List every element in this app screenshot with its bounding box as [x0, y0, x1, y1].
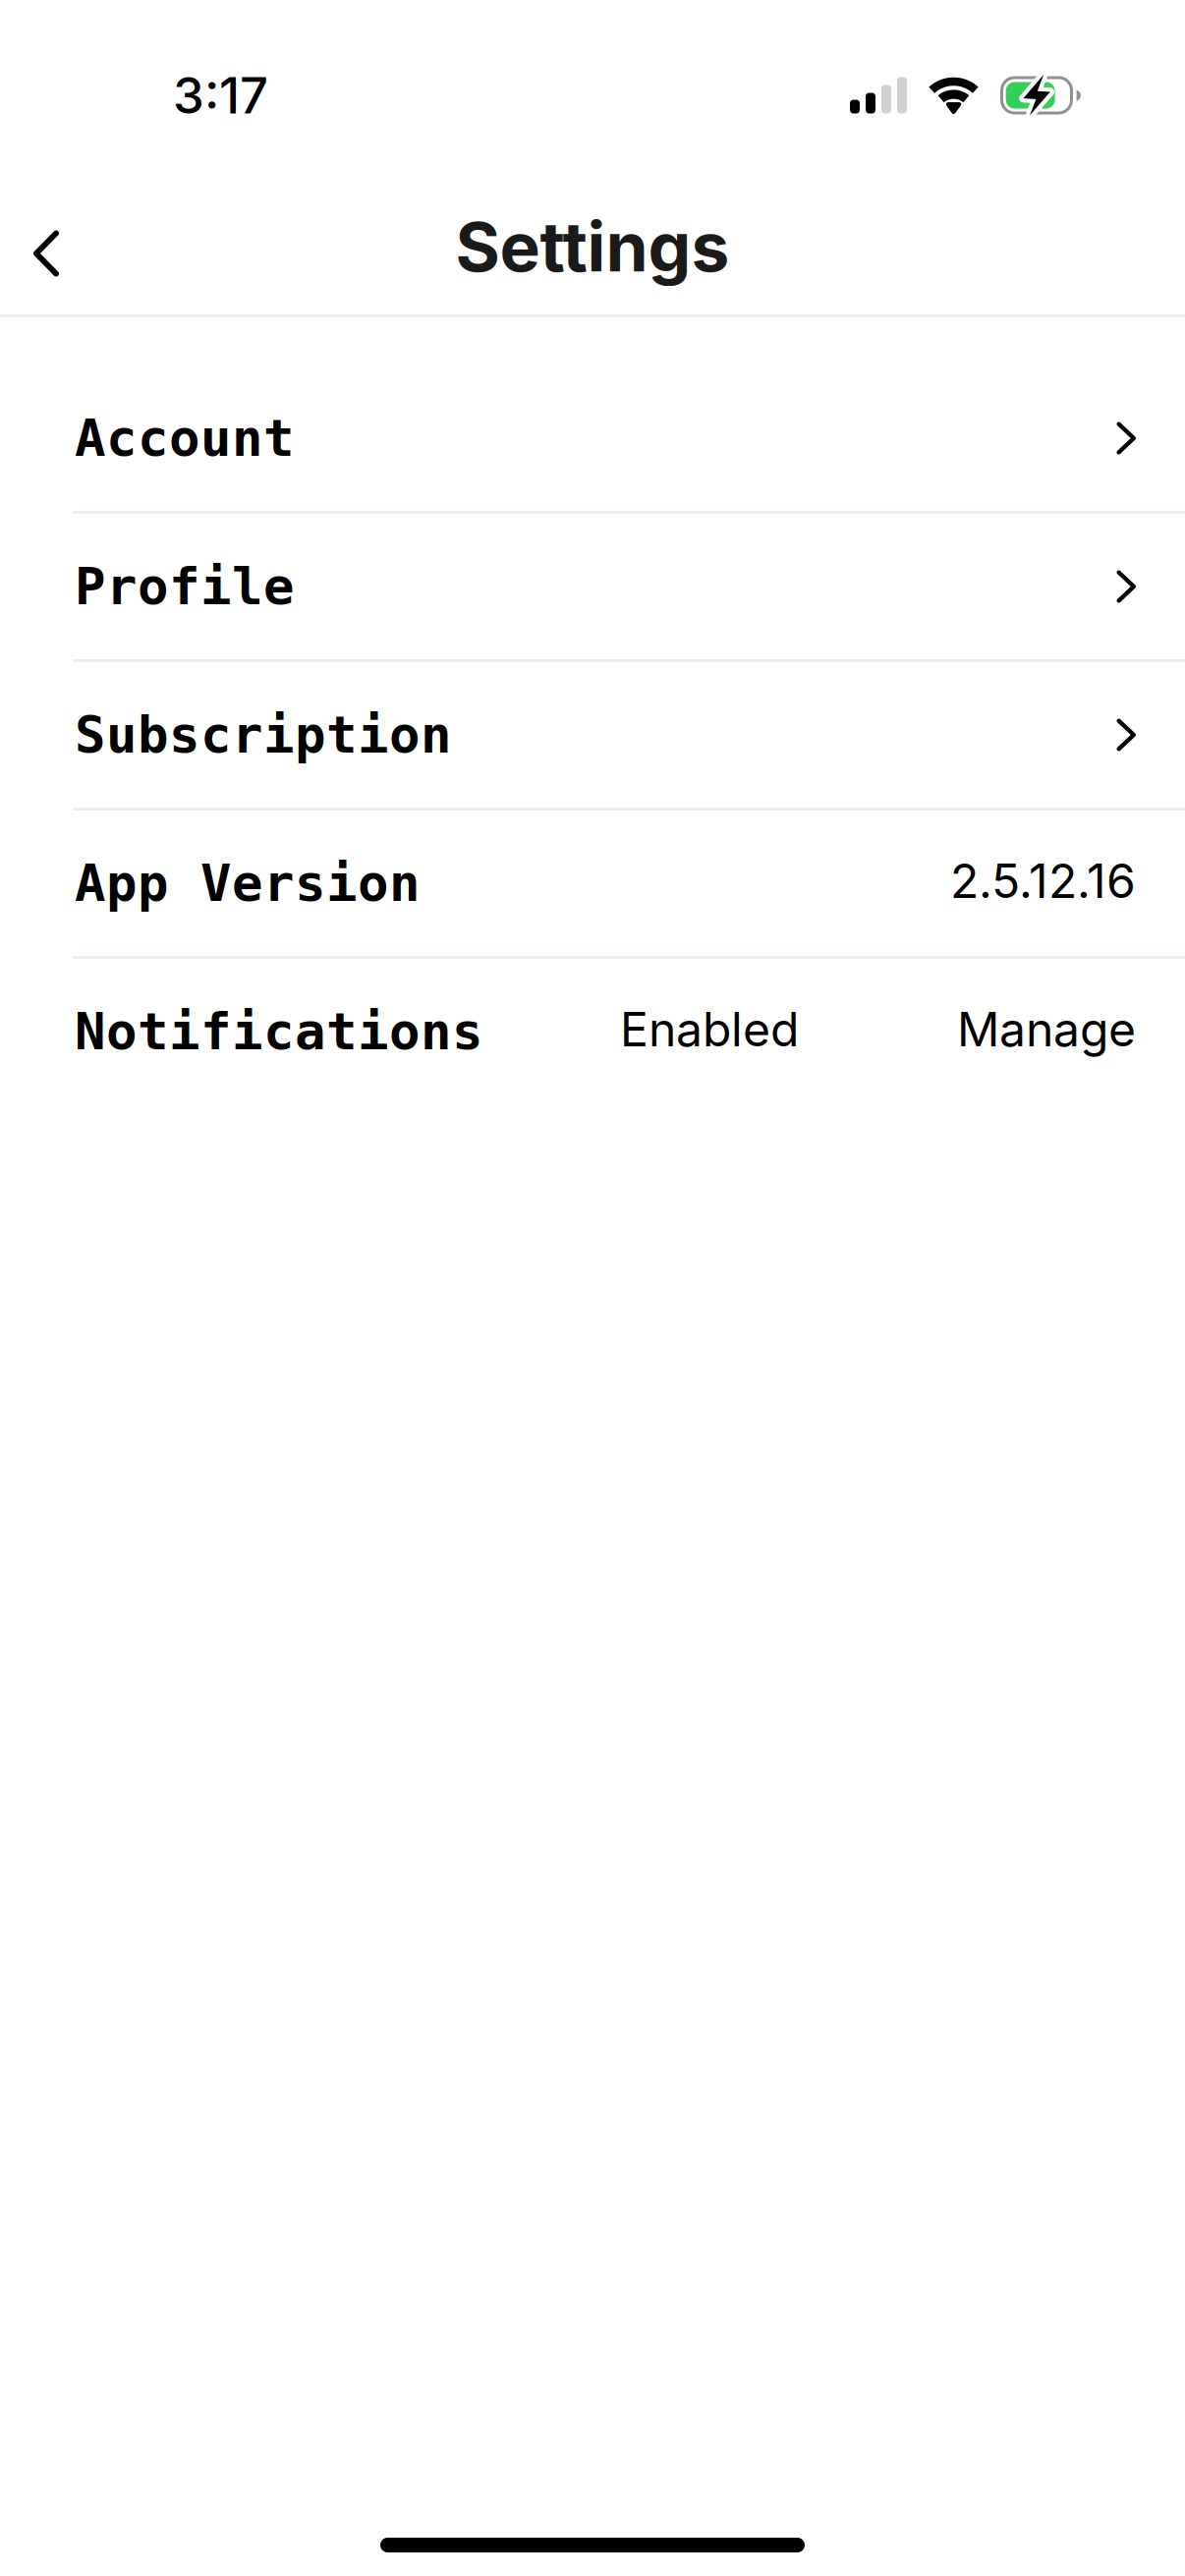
- staticText: 3:17: [173, 65, 268, 125]
- staticText: Manage: [957, 1001, 1136, 1058]
- button[interactable]: Profile: [0, 514, 1185, 659]
- staticText: Profile: [75, 557, 295, 616]
- button[interactable]: Back: [0, 171, 92, 301]
- staticText: Notifications: [75, 1002, 483, 1061]
- staticText: Account: [75, 408, 295, 468]
- staticText: Subscription: [75, 705, 452, 765]
- staticText: Enabled: [620, 1001, 799, 1058]
- button[interactable]: Subscription: [0, 662, 1185, 808]
- button[interactable]: Account: [0, 365, 1185, 511]
- button[interactable]: Manage: [957, 1001, 1136, 1063]
- staticText: Settings: [455, 205, 730, 288]
- button[interactable]: App Version: [0, 811, 1185, 956]
- staticText: 2.5.12.16: [950, 852, 1136, 909]
- staticText: App Version: [75, 853, 421, 913]
